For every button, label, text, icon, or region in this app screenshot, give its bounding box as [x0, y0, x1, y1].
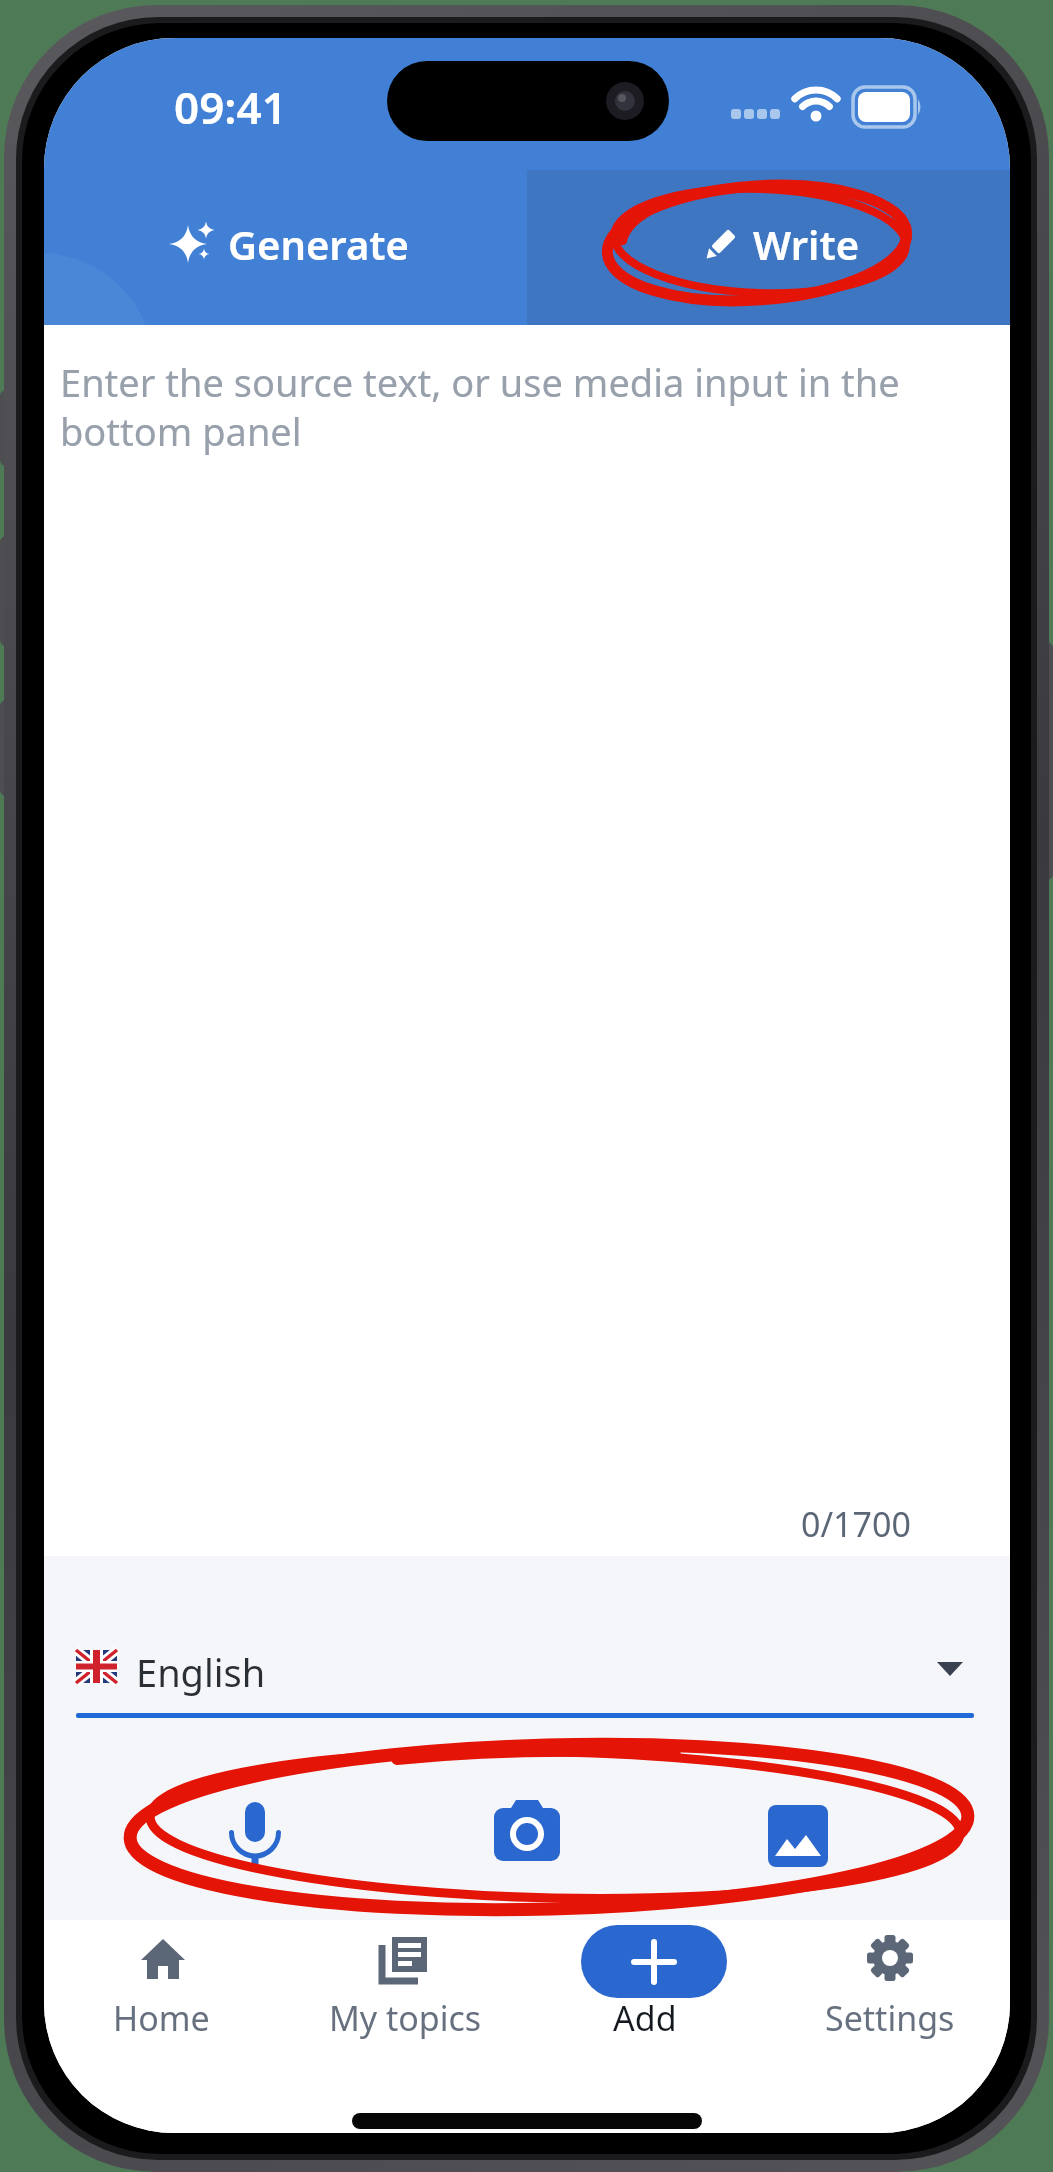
staticText: Add [613, 1995, 677, 2041]
staticText: My topics [329, 1995, 482, 2041]
staticText: Enter the source text, or use media inpu… [60, 356, 900, 457]
button[interactable]: Generate [168, 204, 468, 284]
staticText: 0/1700 [801, 1501, 911, 1547]
staticText: Settings [825, 1995, 955, 2041]
staticText: 09:41 [174, 77, 287, 137]
button[interactable] [64, 1634, 984, 1704]
staticText: Home [113, 1995, 210, 2041]
staticText: Write [753, 217, 860, 271]
button[interactable]: Home [51, 1978, 271, 2058]
button[interactable]: My topics [275, 1978, 535, 2058]
staticText: English [136, 1646, 266, 1698]
button[interactable] [748, 1786, 848, 1886]
staticText: Generate [228, 217, 409, 271]
button[interactable]: Enter the source text, or use media inpu… [60, 356, 960, 457]
button[interactable] [473, 1786, 573, 1886]
button[interactable] [527, 170, 1010, 325]
button[interactable] [581, 1925, 727, 1998]
button[interactable] [206, 1786, 306, 1886]
button[interactable]: Settings [780, 1978, 1000, 2058]
